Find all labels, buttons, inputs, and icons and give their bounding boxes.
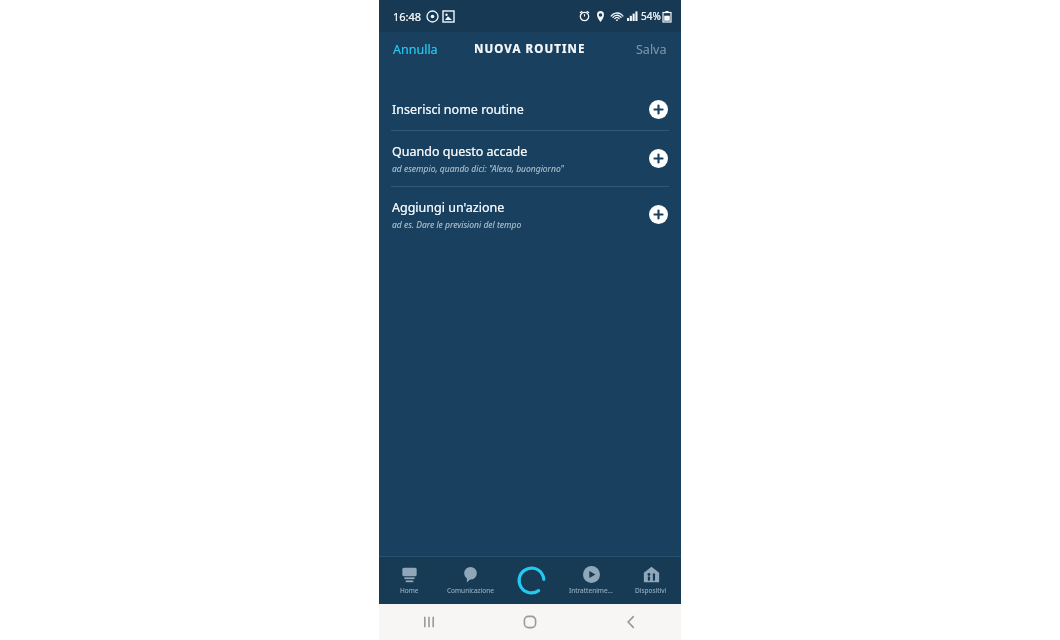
button[interactable]: Comunicazione (440, 557, 501, 604)
staticText: 16:48 (393, 9, 422, 24)
staticText: Annulla (393, 41, 438, 58)
button[interactable]: Aggiungi (649, 100, 668, 119)
button[interactable]: Inserisci nome routine (379, 88, 681, 130)
staticText: ad esempio, quando dici: "Alexa, buongio… (392, 163, 564, 175)
staticText: Inserisci nome routine (392, 101, 524, 118)
staticText: Dispositivi (635, 586, 667, 595)
button[interactable]: Annulla (379, 35, 452, 64)
button[interactable]: Aggiungi un'azione (379, 187, 681, 242)
button[interactable]: Alexa (501, 557, 561, 604)
button[interactable]: Home (479, 604, 580, 640)
button[interactable]: Intrattenime... (561, 557, 621, 604)
staticText: 54% (641, 9, 661, 23)
button[interactable]: Recents (379, 604, 479, 640)
staticText: Comunicazione (447, 586, 494, 595)
staticText: ad es. Dare le previsioni del tempo (392, 219, 522, 231)
button[interactable]: Quando questo accade (379, 131, 681, 186)
button[interactable]: Back (580, 604, 681, 640)
button[interactable]: Dispositivi (621, 557, 681, 604)
button[interactable]: Salva (622, 35, 681, 64)
staticText: Salva (636, 41, 667, 58)
staticText: Aggiungi un'azione (392, 199, 505, 216)
staticText: Intrattenime... (569, 586, 613, 595)
button[interactable]: Home (379, 557, 440, 604)
staticText: Home (400, 586, 419, 595)
button[interactable]: Aggiungi (649, 149, 668, 168)
button[interactable]: Aggiungi (649, 205, 668, 224)
staticText: Quando questo accade (392, 143, 528, 160)
staticText: NUOVA ROUTINE (474, 41, 586, 57)
